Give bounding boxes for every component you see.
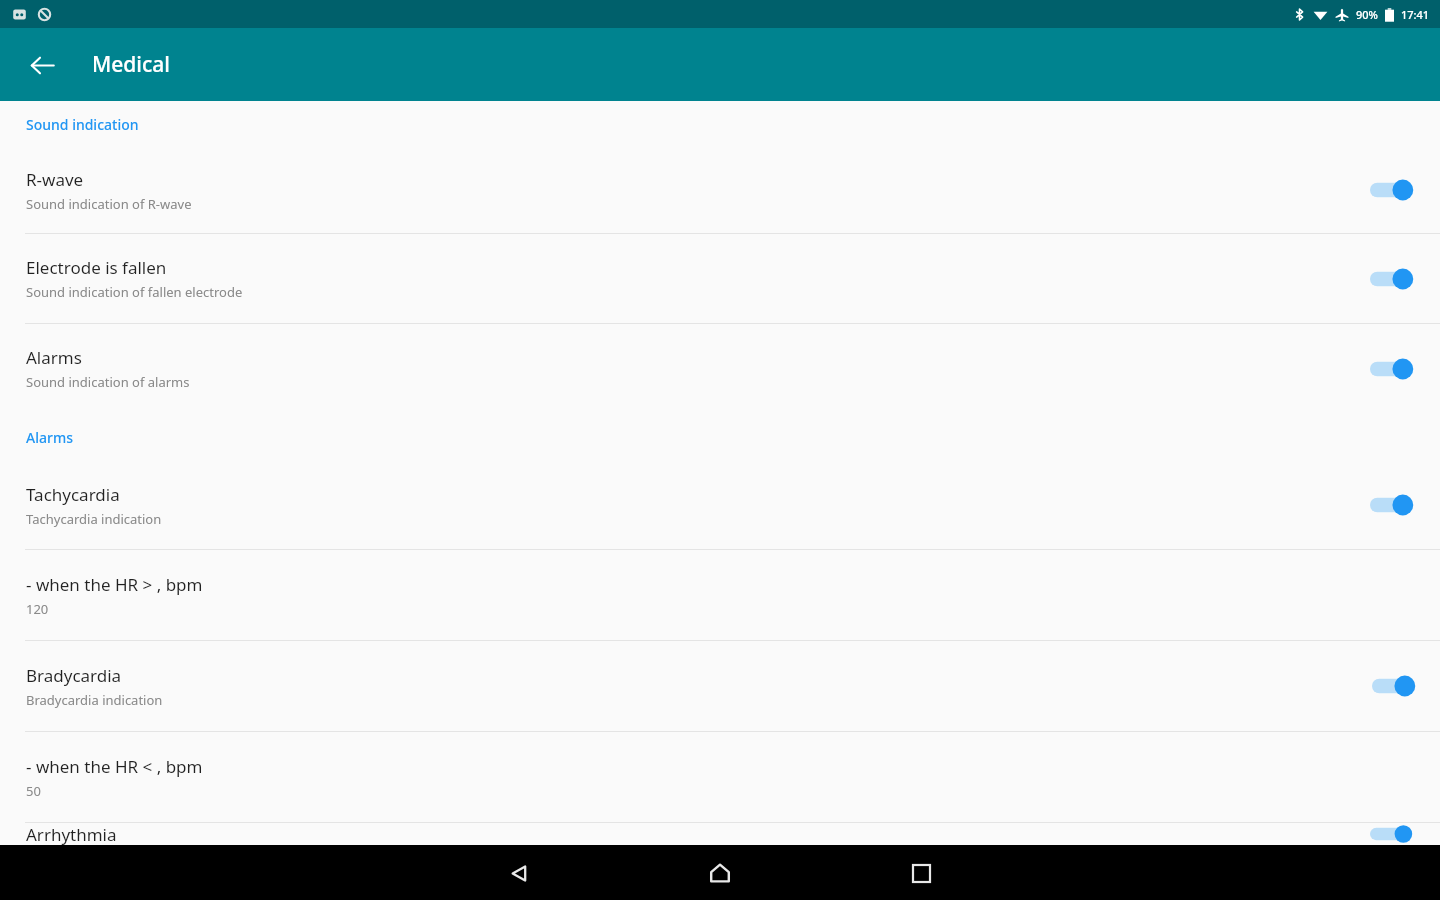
- button[interactable]: - when the HR > , bpm: [0, 550, 1440, 640]
- button[interactable]: - when the HR < , bpm: [0, 732, 1440, 822]
- staticText: 17:41: [1401, 7, 1430, 22]
- staticText: Medical: [92, 50, 171, 79]
- button[interactable]: Toggle Arrhythmia: [1370, 823, 1418, 845]
- button[interactable]: Electrode is fallen: [0, 234, 1440, 323]
- staticText: Bradycardia: [26, 664, 122, 687]
- staticText: Tachycardia: [26, 483, 120, 506]
- button[interactable]: Toggle Bradycardia: [1372, 673, 1420, 699]
- staticText: 120: [26, 600, 49, 618]
- button[interactable]: Toggle Tachycardia: [1370, 492, 1418, 518]
- staticText: R-wave: [26, 168, 84, 191]
- button[interactable]: Toggle Alarms: [1370, 356, 1418, 382]
- staticText: Tachycardia indication: [26, 510, 162, 528]
- button[interactable]: Toggle Electrode is fallen: [1370, 266, 1418, 292]
- staticText: Alarms: [26, 428, 73, 447]
- button[interactable]: R-wave: [0, 147, 1440, 233]
- staticText: Alarms: [26, 346, 82, 369]
- button[interactable]: Home: [697, 850, 743, 896]
- button[interactable]: Alarms: [0, 324, 1440, 413]
- button[interactable]: Back: [14, 37, 70, 93]
- button[interactable]: Back: [498, 852, 540, 894]
- staticText: 50: [26, 782, 41, 800]
- button[interactable]: Bradycardia: [0, 641, 1440, 731]
- button[interactable]: Tachycardia: [0, 461, 1440, 549]
- staticText: Electrode is fallen: [26, 256, 167, 279]
- staticText: - when the HR > , bpm: [26, 573, 203, 596]
- staticText: 90%: [1356, 7, 1378, 22]
- button[interactable]: Toggle R-wave: [1370, 177, 1418, 203]
- staticText: Arrhythmia: [26, 823, 117, 845]
- staticText: - when the HR < , bpm: [26, 755, 203, 778]
- staticText: Bradycardia indication: [26, 691, 163, 709]
- staticText: Sound indication: [26, 115, 139, 134]
- staticText: Sound indication of R-wave: [26, 195, 192, 213]
- button[interactable]: Arrhythmia: [0, 823, 1440, 845]
- button[interactable]: Recent apps: [900, 852, 942, 894]
- staticText: Sound indication of fallen electrode: [26, 283, 243, 301]
- staticText: Sound indication of alarms: [26, 373, 190, 391]
